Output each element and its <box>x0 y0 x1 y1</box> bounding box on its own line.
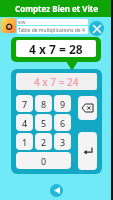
button[interactable]: 0 <box>16 152 71 169</box>
staticText: 7 <box>22 98 28 110</box>
button[interactable]: Backspace <box>78 96 97 120</box>
button[interactable]: 2 <box>35 133 52 150</box>
staticText: 5 <box>41 117 47 129</box>
button[interactable]: Application icon <box>1 18 16 33</box>
button[interactable]: 9 <box>54 95 71 112</box>
button[interactable]: 8 <box>35 95 52 112</box>
staticText: 1 <box>22 136 28 148</box>
staticText: 3 <box>60 136 66 148</box>
button[interactable]: 5 <box>35 114 52 131</box>
staticText: 8 <box>41 98 47 110</box>
staticText: MW <box>18 20 26 25</box>
staticText: 2 <box>41 136 47 148</box>
button[interactable]: 1 <box>16 133 33 150</box>
staticText: 0 <box>41 155 47 167</box>
button[interactable]: Enter <box>78 132 97 170</box>
staticText: Comptez Bien et Vite <box>15 3 99 14</box>
staticText: 4 <box>22 117 28 129</box>
button[interactable]: 7 <box>16 95 33 112</box>
button[interactable]: Back <box>50 184 63 197</box>
button[interactable]: Close advertisement <box>89 21 104 36</box>
button[interactable]: 6 <box>54 114 71 131</box>
staticText: 6 <box>60 117 66 129</box>
staticText: 4 x 7 = 28 <box>29 41 83 57</box>
button[interactable]: 3 <box>54 133 71 150</box>
staticText: Table de multiplications de 4 <box>18 27 85 34</box>
staticText: 9 <box>60 98 66 110</box>
staticText: 4 x 7 = 24 <box>34 75 79 89</box>
button[interactable]: 4 <box>16 114 33 131</box>
